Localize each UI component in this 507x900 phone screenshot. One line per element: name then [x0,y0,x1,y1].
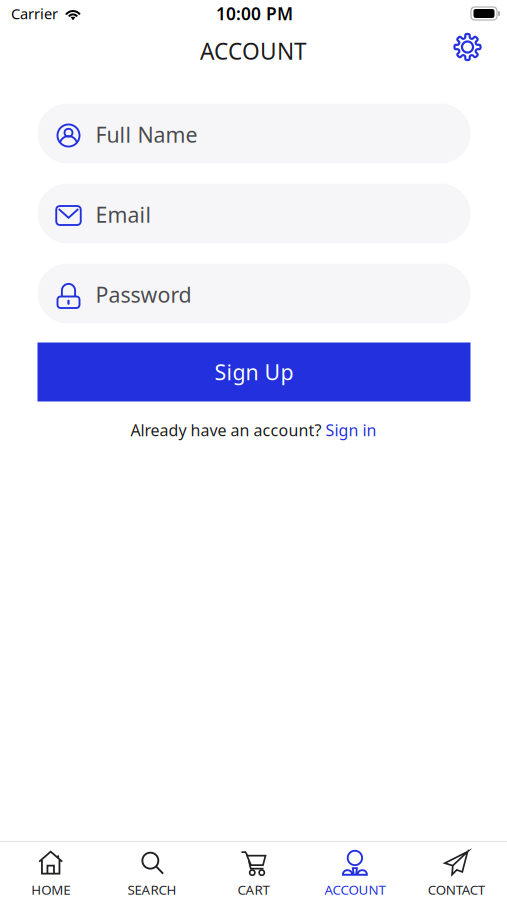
button[interactable]: Sign in [325,419,376,441]
staticText: HOME [31,881,70,898]
button[interactable]: CONTACT [406,838,507,900]
staticText: ACCOUNT [324,881,385,898]
button[interactable]: SEARCH [101,838,203,900]
button[interactable]: Settings [449,33,485,69]
button[interactable]: Sign Up [37,342,470,401]
staticText: Already have an account? [130,419,325,441]
staticText: Email [95,200,151,229]
staticText: CONTACT [428,881,485,898]
staticText: ACCOUNT [200,36,307,66]
staticText: Sign Up [214,358,293,386]
staticText: CART [237,881,269,898]
staticText: Password [95,280,191,309]
staticText: Sign in [325,419,376,441]
button[interactable]: CART [203,838,304,900]
button[interactable]: HOME [0,838,101,900]
staticText: Carrier [11,4,58,23]
staticText: Full Name [95,120,197,149]
staticText: SEARCH [128,881,177,898]
staticText: 10:00 PM [216,2,293,25]
button[interactable]: ACCOUNT [304,838,406,900]
